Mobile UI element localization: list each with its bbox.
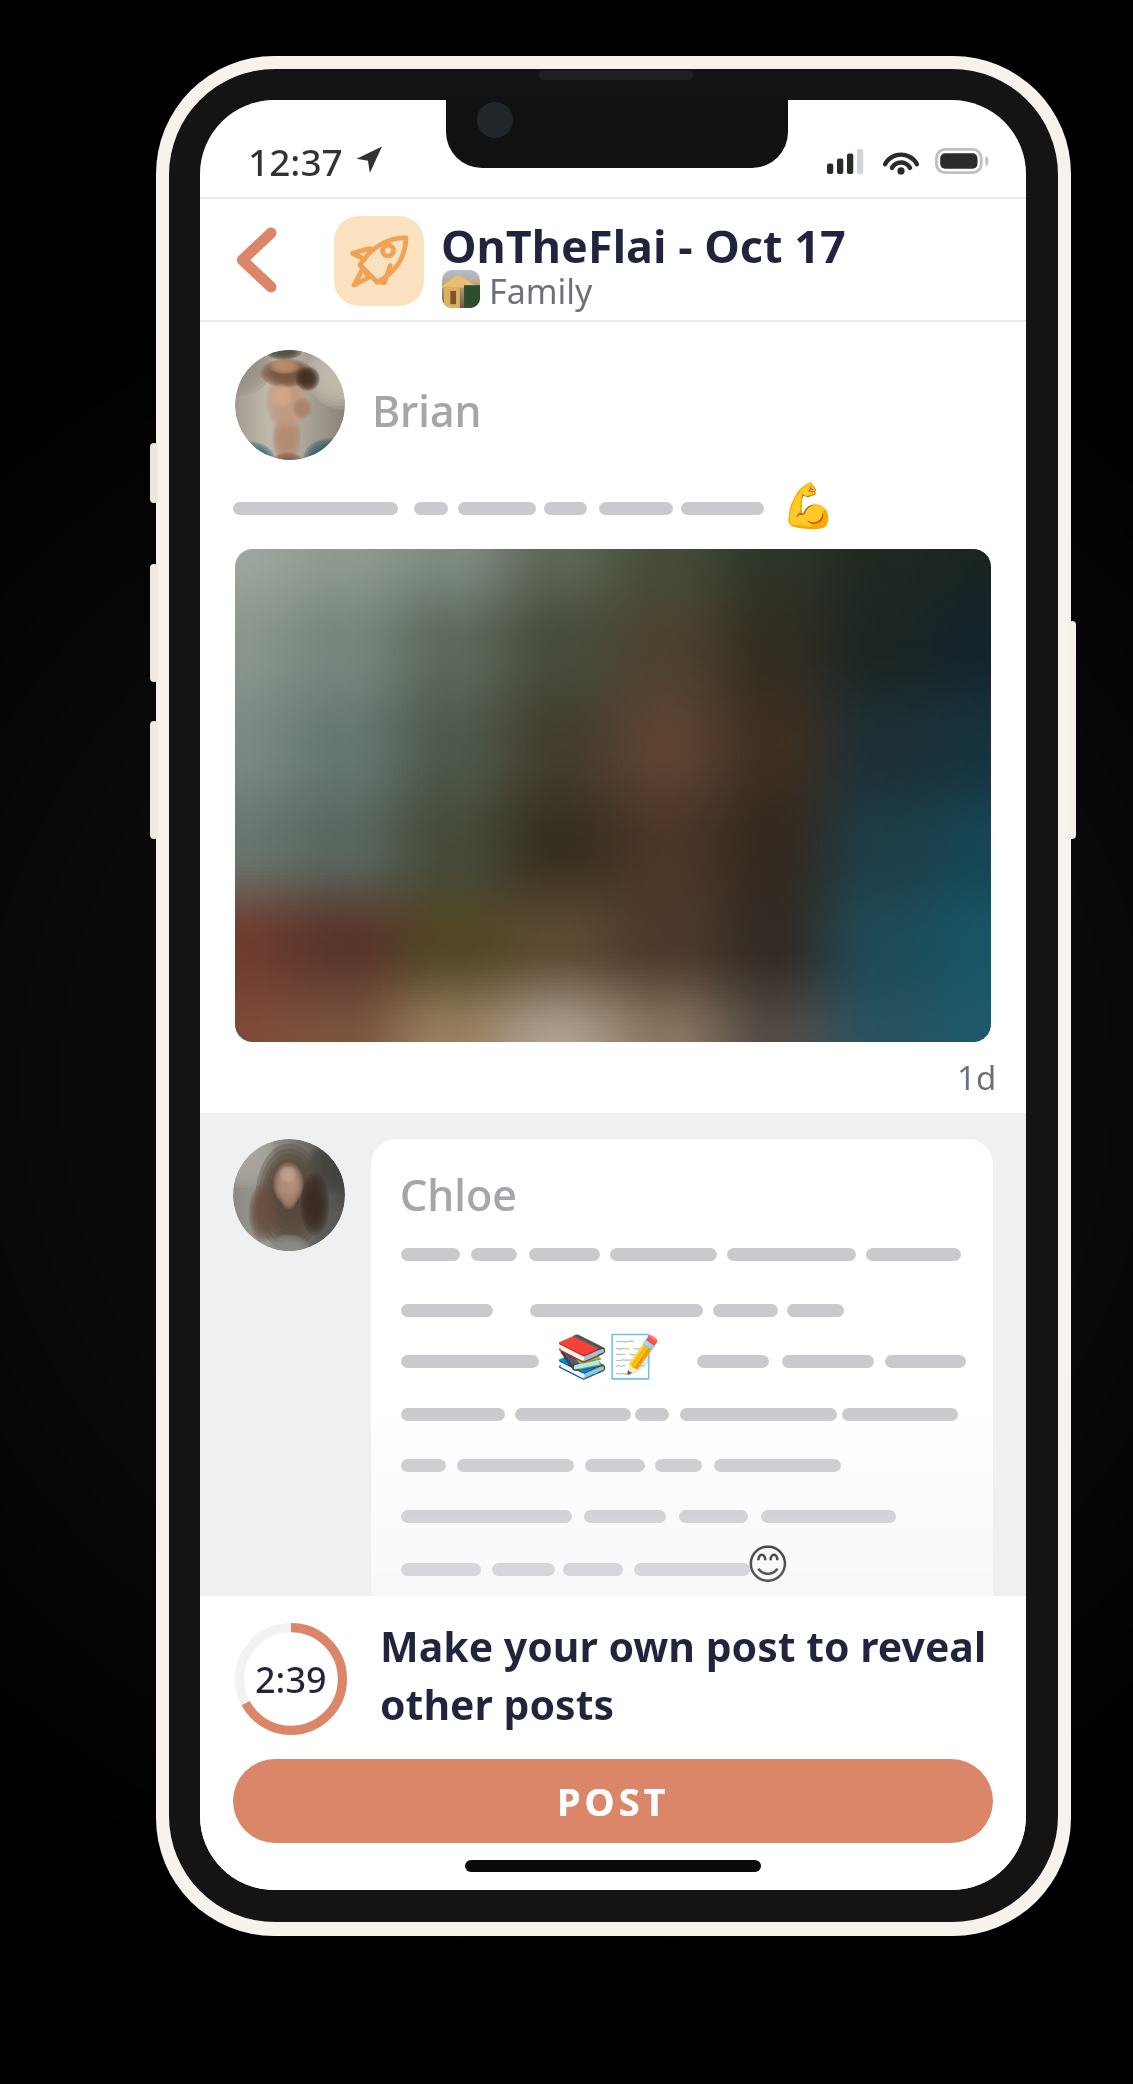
button[interactable]: Brian — [368, 372, 548, 434]
staticText: 💪 — [781, 480, 836, 532]
staticText: 1d — [957, 1055, 997, 1100]
button[interactable]: Brian profile photo — [235, 350, 345, 460]
staticText: 📚📝 — [556, 1332, 661, 1381]
staticText: Brian — [372, 381, 482, 440]
button[interactable]: Chloe profile photo — [233, 1139, 345, 1251]
button[interactable]: OnTheFlai - Oct 17 — [441, 205, 861, 265]
staticText: OnTheFlai - Oct 17 — [441, 215, 846, 275]
button[interactable]: Back — [200, 197, 312, 322]
button[interactable]: OnTheFlai group — [334, 216, 424, 306]
staticText: Family — [489, 268, 593, 314]
staticText: 2:39 — [255, 1655, 327, 1704]
staticText: Chloe — [400, 1165, 517, 1224]
staticText: 12:37 — [248, 136, 343, 186]
button[interactable]: Chloe — [371, 1139, 993, 1596]
button[interactable]: Brian's photo post — [235, 549, 991, 1042]
staticText: Make your own post to reveal other posts — [380, 1618, 996, 1732]
staticText: POST — [557, 1775, 670, 1827]
staticText: 😊 — [746, 1540, 790, 1589]
button[interactable]: POST — [233, 1759, 993, 1843]
